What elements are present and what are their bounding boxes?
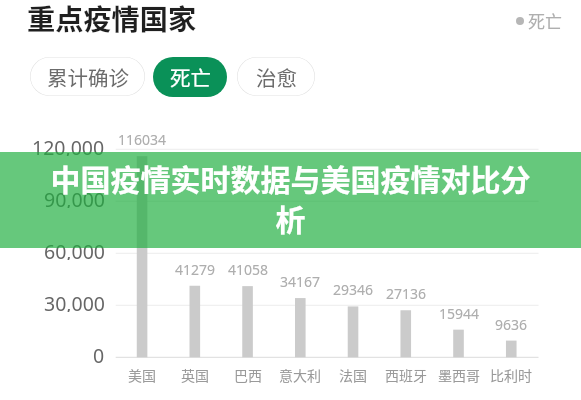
button[interactable]: 西班牙 [366,365,446,385]
staticText: 法国 [339,365,367,385]
button[interactable]: 重点疫情国家 [27,0,197,38]
staticText: 比利时 [490,365,532,385]
staticText: 死亡 [528,8,562,33]
button[interactable]: 图例 死亡 [516,8,562,33]
staticText: 116034 [118,130,167,146]
button[interactable]: 死亡 [153,57,227,97]
staticText: 治愈 [256,62,297,92]
staticText: 西班牙 [385,365,427,385]
staticText: 41279 [175,260,216,276]
staticText: 重点疫情国家 [27,0,197,38]
staticText: 美国 [128,365,156,385]
staticText: 27136 [386,284,427,300]
staticText: 累计确诊 [47,62,129,92]
staticText: 英国 [181,365,209,385]
button[interactable]: 墨西哥 [419,365,499,385]
staticText: 意大利 [279,365,321,385]
staticText: 0 [93,342,105,364]
staticText: 34167 [280,272,321,288]
staticText: 巴西 [234,365,262,385]
staticText: 29346 [333,280,374,296]
staticText: 30,000 [44,290,105,312]
button[interactable]: 英国 [155,365,235,385]
button[interactable]: 意大利 [260,365,340,385]
staticText: 墨西哥 [438,365,480,385]
staticText: 60,000 [44,238,105,260]
staticText: 死亡 [170,62,211,92]
button[interactable]: 巴西 [208,365,288,385]
button[interactable]: 治愈 [237,57,315,96]
button[interactable]: 比利时 [471,365,551,385]
staticText: 中国疫情实时数据与美国疫情对比分析 [43,156,538,238]
button[interactable]: 法国 [313,365,393,385]
button[interactable]: 累计确诊 [30,57,145,96]
button[interactable]: 中国疫情实时数据与美国疫情对比分析 [0,152,581,248]
staticText: 41058 [228,260,269,276]
staticText: 90,000 [44,186,105,208]
button[interactable]: 美国 [102,365,182,385]
staticText: 15944 [439,304,480,320]
staticText: 120,000 [32,134,105,156]
staticText: 9636 [495,315,528,331]
